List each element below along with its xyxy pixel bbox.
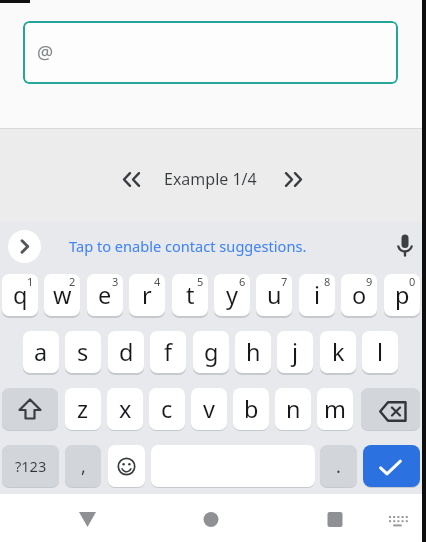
staticText: 3 (112, 274, 119, 289)
staticText: q (13, 279, 28, 311)
staticText: f (164, 336, 173, 368)
staticText: y (226, 279, 238, 311)
staticText: h (246, 336, 261, 368)
staticText: d (119, 336, 134, 368)
staticText: e (98, 279, 112, 311)
staticText: p (395, 279, 410, 311)
staticText: 9 (366, 274, 373, 289)
staticText: b (244, 393, 259, 425)
staticText: r (142, 279, 152, 311)
staticText: 5 (197, 274, 204, 289)
staticText: x (119, 393, 132, 425)
staticText: n (286, 393, 301, 425)
staticText: g (204, 336, 219, 368)
staticText: j (292, 336, 299, 368)
staticText: s (77, 336, 89, 368)
staticText: t (186, 279, 195, 311)
staticText: a (34, 336, 48, 368)
staticText: v (203, 393, 215, 425)
staticText: Example 1/4 (164, 168, 257, 190)
staticText: w (53, 279, 72, 311)
staticText: c (161, 393, 173, 425)
staticText: u (267, 279, 282, 311)
staticText: l (377, 336, 384, 368)
staticText: . (336, 454, 341, 479)
staticText: 8 (324, 274, 331, 289)
staticText: Tap to enable contact suggestions. (69, 236, 307, 256)
staticText: 6 (239, 274, 246, 289)
staticText: m (324, 393, 346, 425)
staticText: z (77, 393, 89, 425)
staticText: @ (37, 40, 54, 65)
staticText: , (81, 454, 86, 479)
staticText: k (332, 336, 345, 368)
staticText: o (352, 279, 367, 311)
staticText: 2 (69, 274, 76, 289)
staticText: 0 (409, 274, 416, 289)
staticText: 7 (281, 274, 288, 289)
staticText: ?123 (15, 456, 47, 476)
staticText: 4 (154, 274, 161, 289)
staticText: 1 (27, 274, 34, 289)
staticText: i (314, 279, 321, 311)
